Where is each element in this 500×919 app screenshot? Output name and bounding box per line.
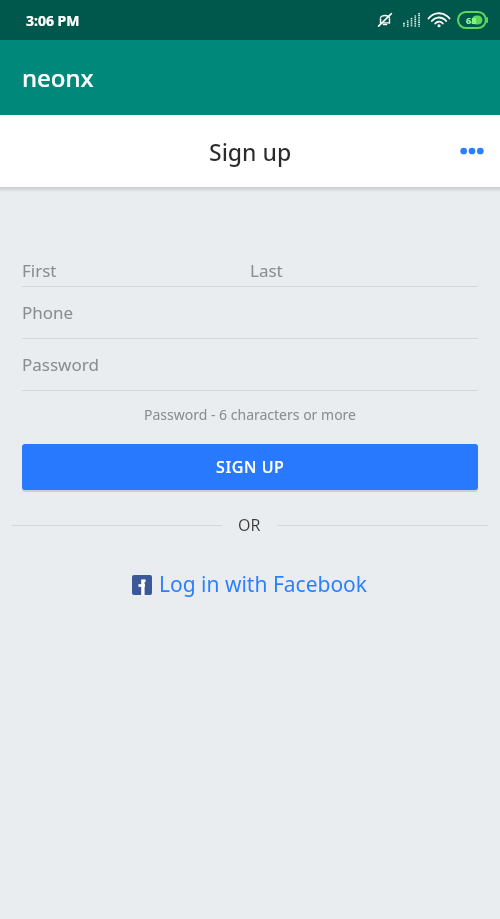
staticText: Sign up bbox=[209, 136, 292, 167]
staticText: OR bbox=[238, 514, 261, 536]
button[interactable]: Log in with Facebook bbox=[124, 566, 376, 603]
staticText: SIGN UP bbox=[216, 456, 285, 478]
staticText: First bbox=[22, 259, 57, 282]
staticText: Log in with Facebook bbox=[159, 570, 368, 599]
staticText: Last bbox=[250, 259, 283, 282]
staticText: 68 bbox=[466, 14, 477, 26]
staticText: Password - 6 characters or more bbox=[144, 405, 356, 424]
staticText: neonx bbox=[22, 61, 94, 94]
button[interactable]: More options bbox=[444, 123, 500, 179]
button[interactable]: Password bbox=[22, 339, 478, 390]
staticText: Password bbox=[22, 353, 99, 376]
staticText: 3:06 PM bbox=[26, 11, 80, 30]
button[interactable]: SIGN UP bbox=[22, 444, 478, 490]
button[interactable]: Phone bbox=[22, 287, 478, 338]
staticText: Phone bbox=[22, 301, 74, 324]
button[interactable]: First bbox=[22, 255, 478, 286]
